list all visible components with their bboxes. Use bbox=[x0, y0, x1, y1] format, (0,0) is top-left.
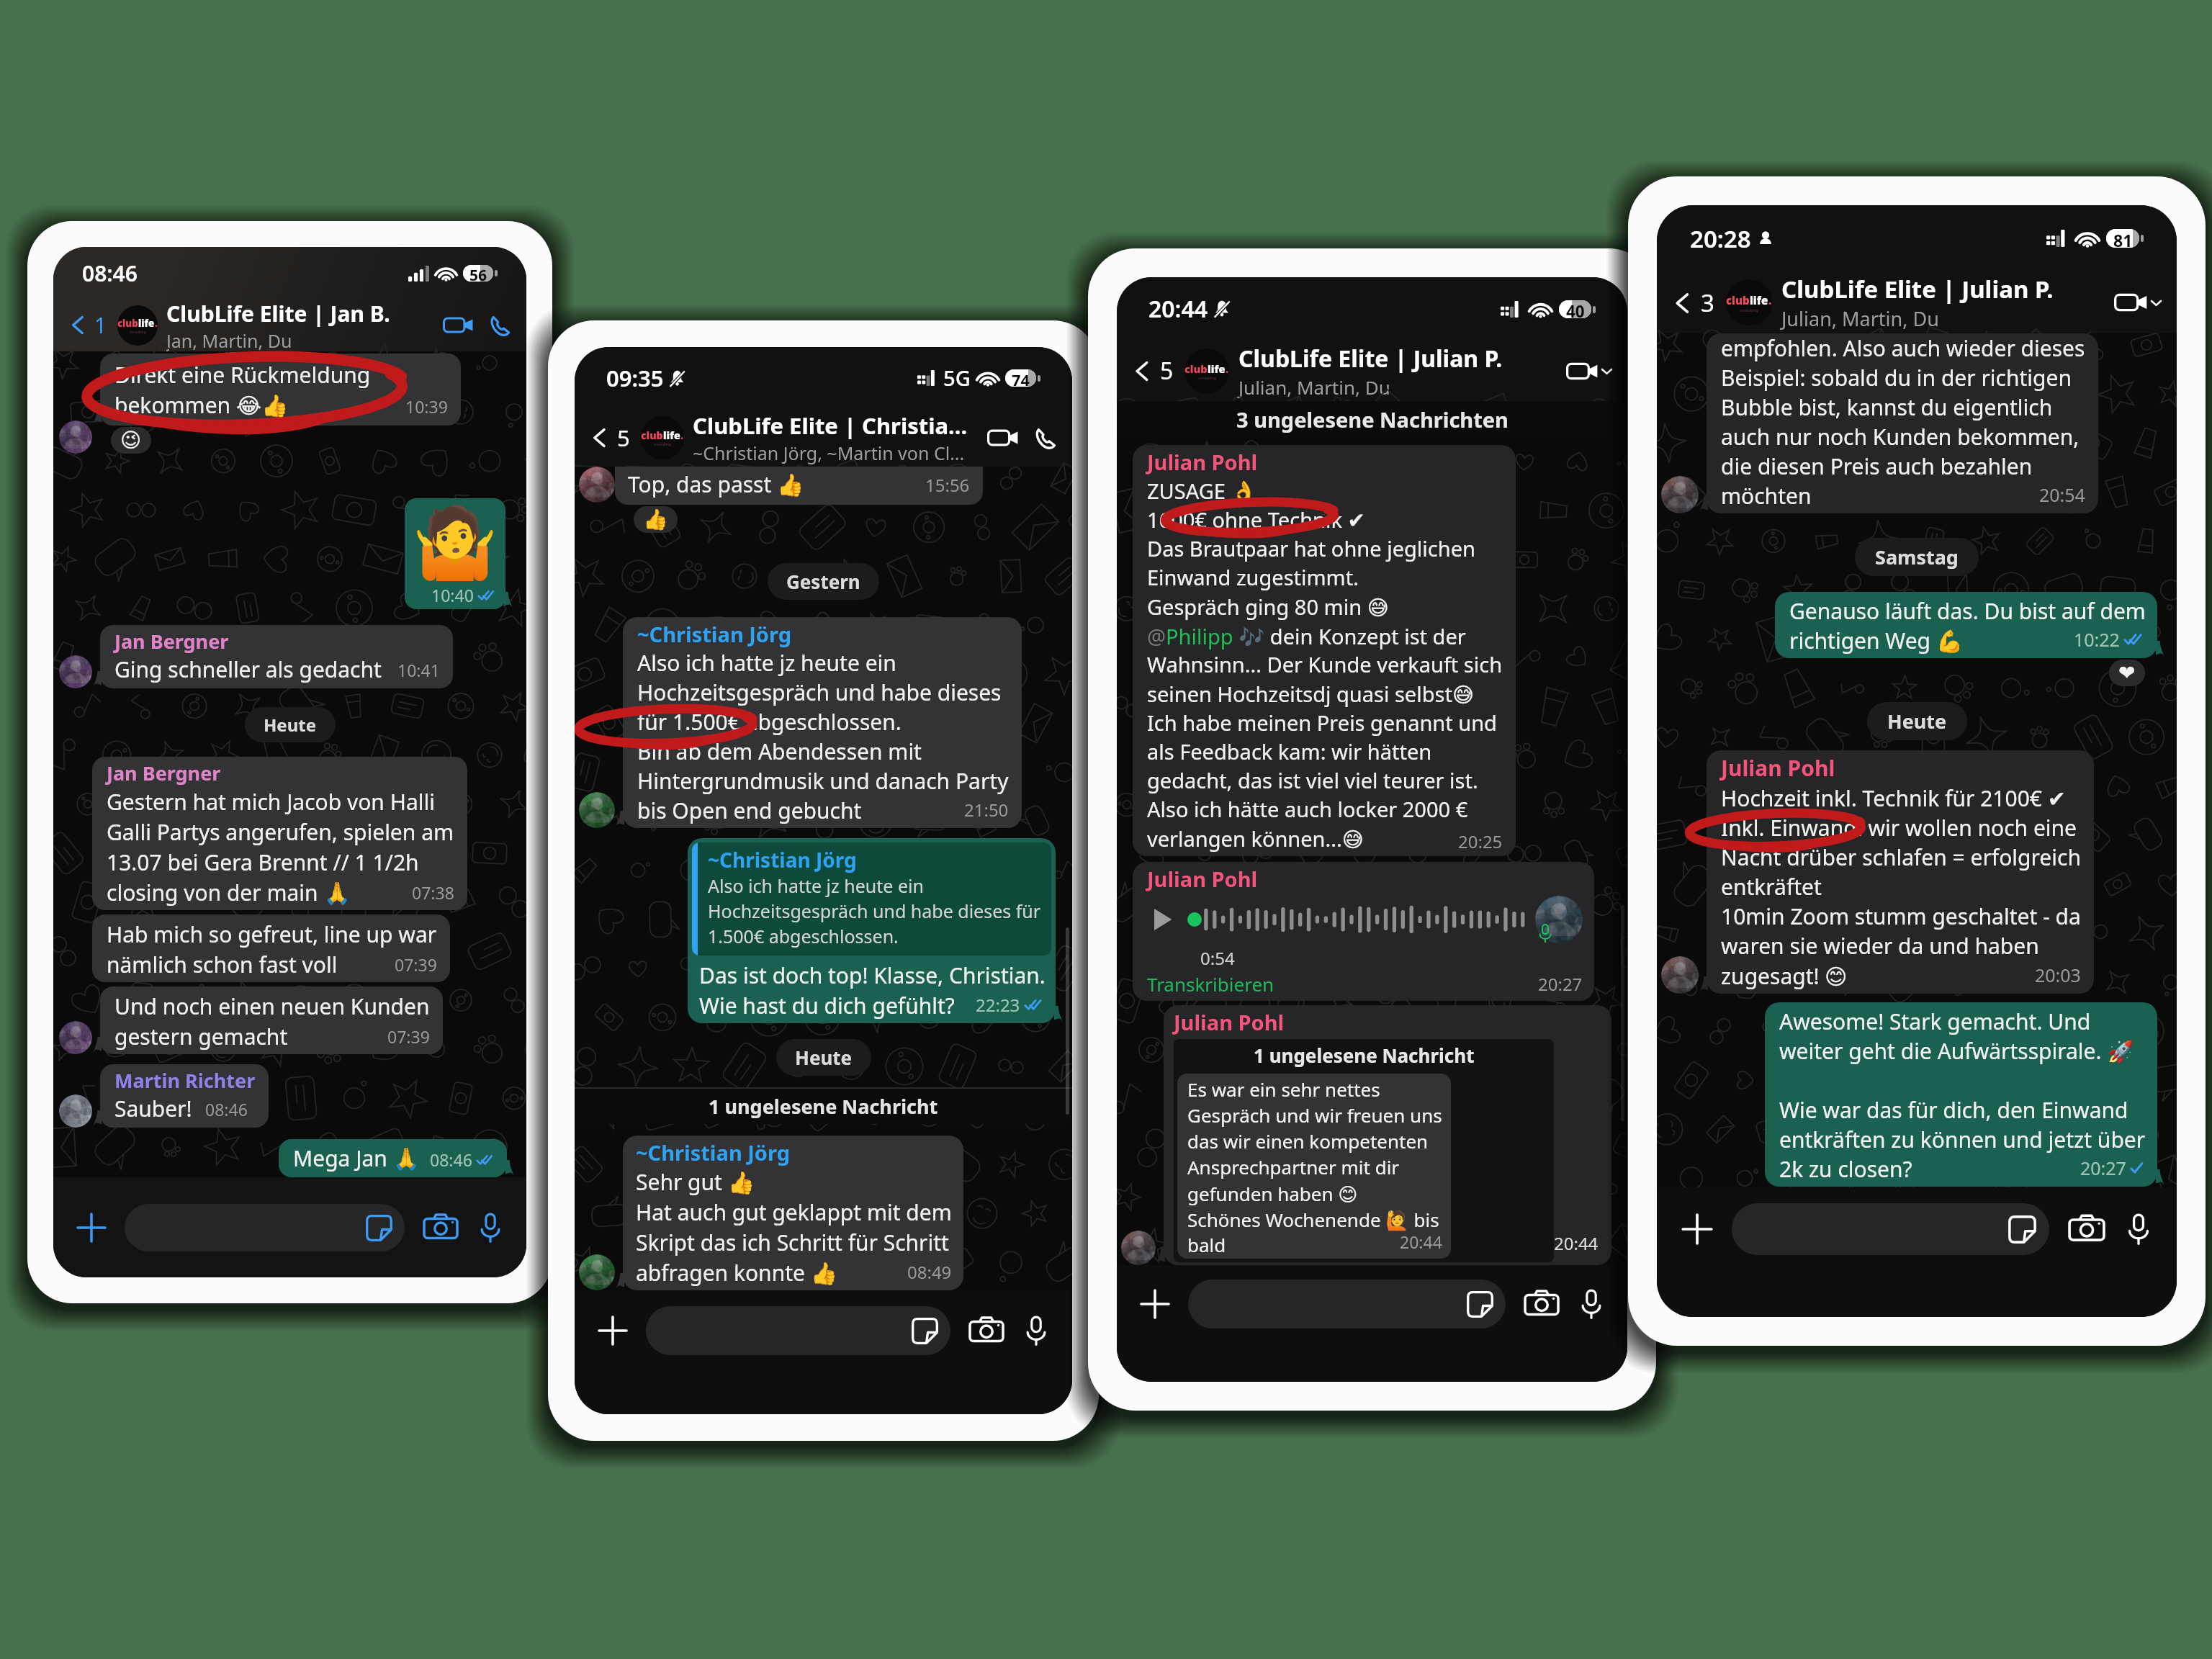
staticText: 22:23 bbox=[976, 993, 1020, 1017]
button[interactable]: Video call bbox=[987, 427, 1019, 449]
staticText: Mega Jan 🙏 bbox=[293, 1143, 420, 1173]
button[interactable]: Voice message bbox=[1020, 1315, 1052, 1346]
button[interactable]: Voice message bbox=[2122, 1213, 2155, 1246]
button[interactable]: Attach bbox=[1678, 1210, 1716, 1248]
staticText: 3 ungelesene Nachrichten bbox=[1236, 405, 1509, 433]
staticText: ClubLife Elite | Julian P. bbox=[1781, 273, 2054, 305]
button[interactable]: Camera bbox=[423, 1210, 459, 1246]
button[interactable]: ClubLife Elite | Julian P. bbox=[1781, 273, 2114, 332]
button[interactable]: ~Christian Jörg bbox=[688, 838, 1056, 1023]
button[interactable]: Heute bbox=[776, 1039, 871, 1076]
staticText: ~Christian Jörg bbox=[637, 620, 791, 648]
button[interactable]: Top, das passt 👍 bbox=[615, 467, 983, 505]
button[interactable]: Jan Bergner bbox=[92, 757, 467, 910]
button[interactable]: Heute bbox=[1867, 702, 1967, 740]
button[interactable]: Jan Bergner bbox=[100, 625, 453, 688]
button[interactable]: Direkt eine Rückmeldung bekommen 😂👍 bbox=[100, 354, 461, 426]
staticText: consulting bbox=[654, 442, 672, 447]
staticText: 5 bbox=[617, 423, 630, 453]
staticText: Julian, Martin, Du bbox=[1781, 305, 1939, 332]
staticText: Transkribieren bbox=[1147, 971, 1274, 997]
button[interactable]: Heute bbox=[245, 707, 336, 742]
staticText: 20:54 bbox=[2039, 482, 2085, 507]
button[interactable]: Voice message bbox=[475, 1212, 506, 1244]
staticText: 20:27 bbox=[1538, 972, 1583, 996]
staticText: 15:56 bbox=[925, 473, 970, 497]
staticText: 81 bbox=[2113, 229, 2133, 248]
button[interactable]: Awesome! Stark gemacht. Und weiter geht … bbox=[1765, 1002, 2157, 1187]
staticText: ~Christian Jörg, ~Martin von Cl... bbox=[693, 441, 965, 465]
button[interactable]: 👍 bbox=[634, 506, 678, 533]
staticText: Und noch einen neuen Kunden gestern gema… bbox=[114, 991, 430, 1051]
button[interactable]: Julian Pohl bbox=[1133, 862, 1594, 1001]
staticText: 1 ungelesene Nachricht bbox=[709, 1093, 938, 1120]
staticText: 20:44 bbox=[1554, 1231, 1599, 1255]
staticText: Jan Bergner bbox=[114, 628, 229, 655]
button[interactable]: Voice message bbox=[1575, 1288, 1607, 1320]
staticText: ~Christian Jörg bbox=[708, 846, 857, 873]
button[interactable]: Martin Richter bbox=[100, 1064, 269, 1128]
button[interactable]: Voice call bbox=[487, 313, 512, 338]
button[interactable] bbox=[1732, 1203, 2049, 1255]
button[interactable]: Video call bbox=[443, 315, 474, 336]
button[interactable]: Camera bbox=[968, 1313, 1004, 1349]
button[interactable]: ~Christian Jörg bbox=[623, 617, 1022, 828]
button[interactable]: Gestern bbox=[768, 563, 879, 600]
button[interactable]: Mega Jan 🙏 bbox=[279, 1139, 507, 1177]
staticText: 07:39 bbox=[395, 953, 437, 976]
staticText: Awesome! Stark gemacht. Und weiter geht … bbox=[1779, 1007, 2146, 1184]
staticText: ClubLife Elite | Jan B. bbox=[166, 299, 390, 328]
staticText: 0:54 bbox=[1200, 946, 1235, 970]
button[interactable]: Attach bbox=[73, 1210, 109, 1246]
button[interactable]: ~Christian Jörg bbox=[623, 1136, 963, 1290]
staticText: Also ich hatte jz heute ein Hochzeitsges… bbox=[637, 648, 1009, 825]
button[interactable]: ClubLife Elite | Jan B. bbox=[166, 299, 443, 351]
button[interactable]: Back bbox=[68, 310, 107, 340]
staticText: 08:49 bbox=[907, 1260, 952, 1284]
staticText: 74 bbox=[1012, 369, 1030, 387]
staticText: 56 bbox=[469, 265, 487, 282]
staticText: 1 bbox=[94, 310, 107, 340]
button[interactable]: Video call bbox=[2114, 291, 2162, 314]
button[interactable]: Back bbox=[1131, 355, 1174, 387]
button[interactable]: ClubLife Elite | Christia... bbox=[693, 410, 987, 465]
staticText: 20:25 bbox=[1458, 829, 1503, 853]
button[interactable]: empfohlen. Also auch wieder dieses Beisp… bbox=[1707, 333, 2098, 513]
staticText: 07:39 bbox=[387, 1025, 430, 1048]
button[interactable]: Back bbox=[1671, 287, 1714, 319]
button[interactable]: Camera bbox=[2068, 1210, 2105, 1248]
staticText: 09:35 bbox=[606, 363, 664, 393]
button[interactable]: 😉 bbox=[111, 427, 151, 454]
staticText: 20:03 bbox=[2035, 963, 2081, 987]
button[interactable]: Samstag bbox=[1855, 538, 1979, 576]
staticText: Direkt eine Rückmeldung bekommen 😂👍 bbox=[114, 359, 371, 421]
staticText: Julian Pohl bbox=[1147, 865, 1258, 893]
button[interactable] bbox=[1188, 1280, 1506, 1328]
staticText: 20:44 bbox=[1400, 1231, 1442, 1253]
staticText: consulting bbox=[130, 330, 146, 334]
button[interactable]: 🤷 bbox=[405, 498, 505, 609]
staticText: life bbox=[1750, 293, 1768, 307]
button[interactable]: Julian Pohl bbox=[1133, 445, 1516, 856]
button[interactable]: Julian Pohl bbox=[1707, 750, 2094, 994]
button[interactable]: Und noch einen neuen Kunden gestern gema… bbox=[100, 986, 443, 1054]
button[interactable]: Genauso läuft das. Du bist auf dem richt… bbox=[1775, 592, 2157, 658]
button[interactable]: Attach bbox=[595, 1313, 631, 1349]
button[interactable]: Hab mich so gefreut, line up war nämlich… bbox=[92, 914, 450, 982]
button[interactable]: ❤️ bbox=[2109, 660, 2145, 686]
staticText: Top, das passt 👍 bbox=[628, 469, 804, 499]
staticText: Genauso läuft das. Du bist auf dem richt… bbox=[1789, 596, 2146, 655]
staticText: Das ist doch top! Klasse, Christian. Wie… bbox=[699, 960, 1046, 1020]
button[interactable]: Back bbox=[589, 423, 630, 453]
staticText: Hochzeit inkl. Technik für 2100€ ✔ Inkl.… bbox=[1721, 783, 2081, 991]
staticText: 1 ungelesene Nachricht bbox=[1254, 1043, 1475, 1068]
button[interactable] bbox=[125, 1204, 405, 1251]
button[interactable]: Video call bbox=[1566, 360, 1613, 382]
button[interactable]: Julian Pohl bbox=[1164, 1005, 1611, 1265]
button[interactable] bbox=[646, 1306, 950, 1355]
button[interactable]: Camera bbox=[1524, 1286, 1560, 1322]
button[interactable]: Voice call bbox=[1033, 426, 1058, 451]
button[interactable]: Attach bbox=[1137, 1286, 1173, 1322]
staticText: Samstag bbox=[1875, 544, 1959, 570]
button[interactable]: ClubLife Elite | Julian P. bbox=[1238, 343, 1566, 400]
